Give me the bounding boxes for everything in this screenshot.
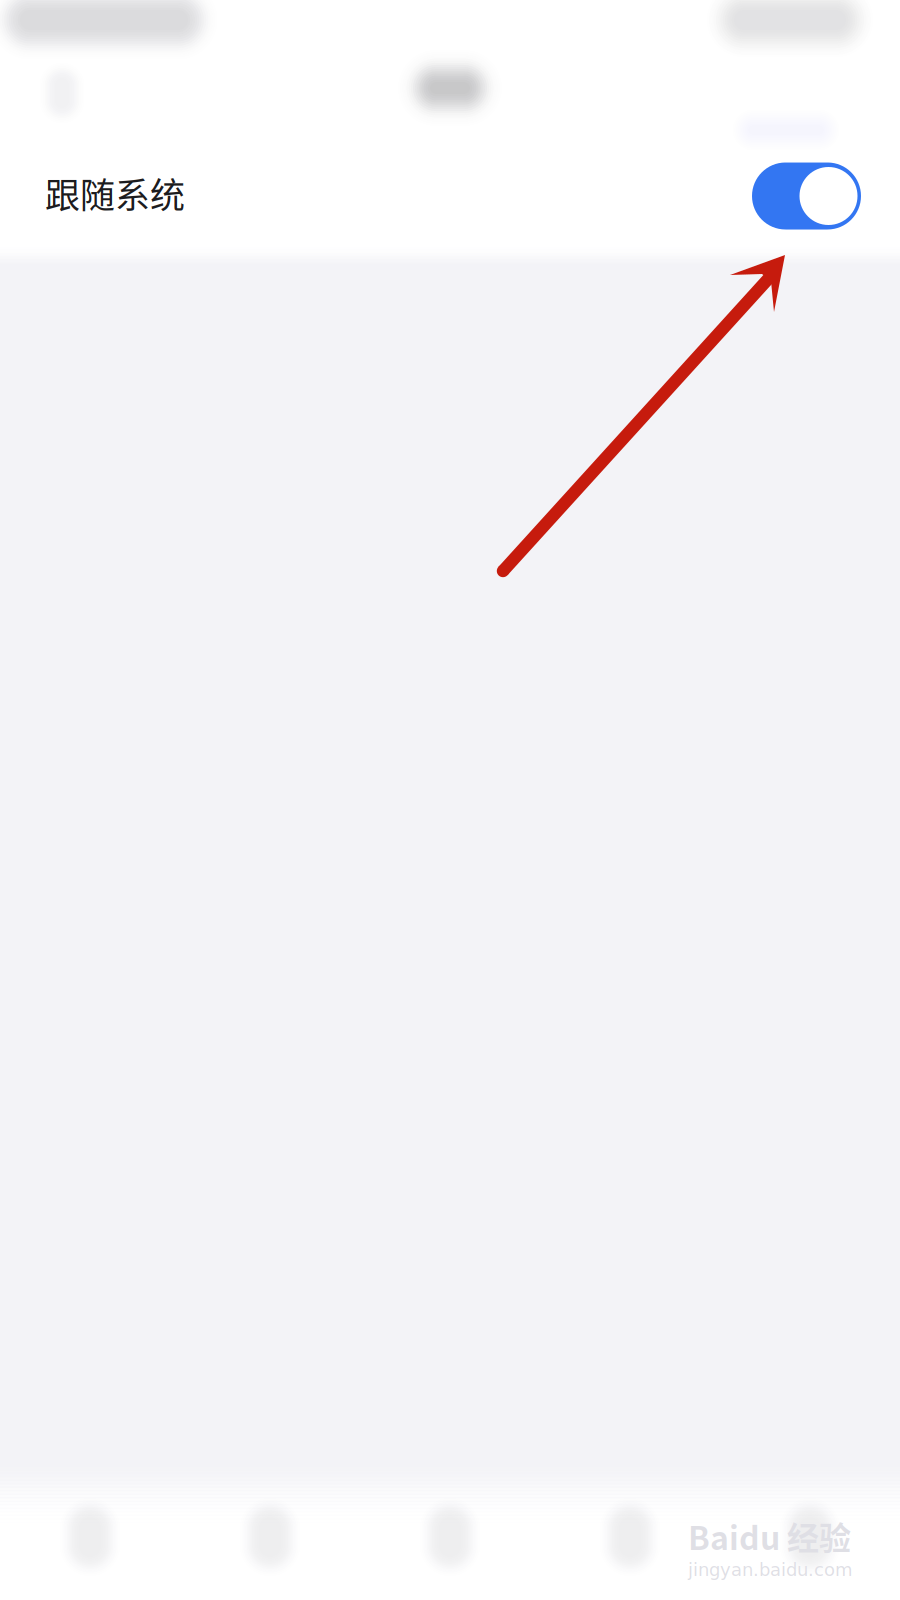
staticText: Baidu 经验: [688, 1513, 851, 1559]
button[interactable]: 标签 1: [0, 1475, 180, 1599]
button[interactable]: 返回: [0, 52, 124, 135]
staticText: 跟随系统: [45, 168, 185, 218]
button[interactable]: 跟随系统: [0, 135, 900, 251]
button[interactable]: 标签 4: [540, 1475, 720, 1599]
staticText: jingyan.baidu.com: [688, 1559, 853, 1580]
button[interactable]: 标签 2: [180, 1475, 360, 1599]
button[interactable]: 标签 3: [360, 1475, 540, 1599]
button[interactable]: 标签 5: [720, 1475, 900, 1599]
